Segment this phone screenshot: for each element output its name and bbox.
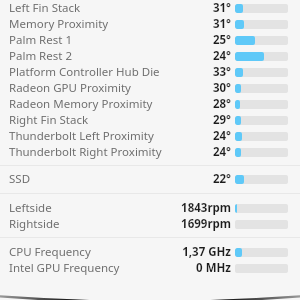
button[interactable]: Radeon Memory Proximity (0, 96, 300, 112)
staticText: 22° (212, 171, 231, 187)
staticText: Intel GPU Frequency (9, 260, 120, 276)
staticText: 24° (212, 128, 231, 144)
staticText: Thunderbolt Right Proximity (9, 144, 162, 160)
staticText: Left Fin Stack (9, 0, 81, 16)
staticText: 1,37 GHz (182, 244, 231, 260)
button[interactable]: Palm Rest 1 (0, 32, 300, 48)
staticText: 28° (212, 96, 231, 112)
button[interactable]: Intel GPU Frequency (0, 260, 300, 276)
staticText: CPU Frequency (9, 244, 91, 260)
button[interactable]: Left Fin Stack (0, 0, 300, 16)
button[interactable]: CPU Frequency (0, 244, 300, 260)
staticText: Radeon GPU Proximity (9, 80, 131, 96)
button[interactable]: Thunderbolt Right Proximity (0, 144, 300, 160)
button[interactable]: Platform Controller Hub Die (0, 64, 300, 80)
staticText: Platform Controller Hub Die (9, 64, 160, 80)
button[interactable]: Thunderbolt Left Proximity (0, 128, 300, 144)
button[interactable]: Memory Proximity (0, 16, 300, 32)
staticText: Palm Rest 1 (9, 32, 72, 48)
button[interactable]: Radeon GPU Proximity (0, 80, 300, 96)
staticText: Palm Rest 2 (9, 48, 72, 64)
staticText: 33° (212, 64, 231, 80)
button[interactable]: SSD (0, 171, 300, 187)
staticText: Radeon Memory Proximity (9, 96, 153, 112)
staticText: 24° (212, 144, 231, 160)
staticText: 31° (212, 16, 231, 32)
staticText: 25° (212, 32, 231, 48)
staticText: Thunderbolt Left Proximity (9, 128, 154, 144)
staticText: 1699rpm (181, 216, 231, 232)
staticText: SSD (9, 171, 31, 187)
button[interactable]: Leftside (0, 200, 300, 216)
button[interactable]: Right Fin Stack (0, 112, 300, 128)
staticText: 29° (212, 112, 231, 128)
staticText: Memory Proximity (9, 16, 109, 32)
staticText: 30° (212, 80, 231, 96)
staticText: 0 MHz (196, 260, 231, 276)
staticText: 31° (212, 0, 231, 16)
staticText: 24° (212, 48, 231, 64)
button[interactable]: Rightside (0, 216, 300, 232)
staticText: 1843rpm (181, 200, 231, 216)
staticText: Right Fin Stack (9, 112, 89, 128)
staticText: Leftside (9, 200, 52, 216)
button[interactable]: Palm Rest 2 (0, 48, 300, 64)
staticText: Rightside (9, 216, 60, 232)
